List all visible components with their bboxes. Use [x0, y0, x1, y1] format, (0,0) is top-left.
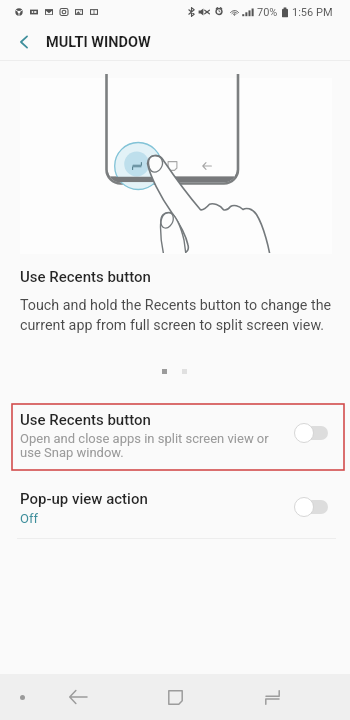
button[interactable]: Back: [58, 677, 98, 717]
staticText: 70%: [257, 6, 278, 19]
button[interactable]: Navigate up: [8, 26, 40, 58]
staticText: Open and close apps in split screen view…: [20, 431, 269, 460]
button[interactable]: Recent apps: [252, 677, 292, 717]
staticText: 1:56 PM: [292, 6, 333, 19]
staticText: Pop-up view action: [20, 490, 148, 508]
staticText: Use Recents button: [20, 411, 151, 429]
button[interactable]: Home: [155, 677, 195, 717]
button[interactable]: Toggle: [293, 422, 333, 444]
button[interactable]: Use Recents button: [12, 404, 344, 470]
button[interactable]: Pop-up view action: [0, 478, 350, 538]
staticText: Off: [20, 511, 38, 526]
staticText: Touch and hold the Recents button to cha…: [20, 297, 332, 333]
staticText: Use Recents button: [20, 268, 151, 286]
button[interactable]: Show keyboard: [20, 695, 25, 700]
staticText: MULTI WINDOW: [46, 34, 151, 51]
button[interactable]: Toggle: [293, 496, 333, 518]
